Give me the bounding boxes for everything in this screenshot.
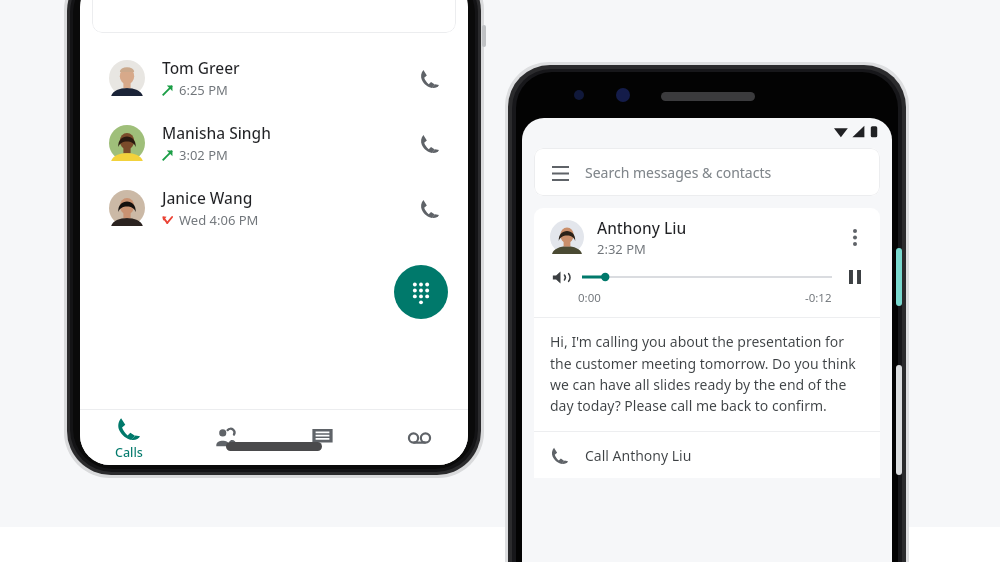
button[interactable]: Speaker xyxy=(550,267,570,287)
button[interactable]: Voicemail xyxy=(371,409,468,465)
staticText: 3:02 PM xyxy=(179,146,228,164)
staticText: Hi, I'm calling you about the presentati… xyxy=(550,332,866,415)
staticText: Call Anthony Liu xyxy=(585,446,692,465)
button[interactable]: Anthony Liu xyxy=(534,208,880,266)
staticText: Anthony Liu xyxy=(597,217,687,238)
staticText: Search messages & contacts xyxy=(585,163,772,182)
staticText: 0:00 xyxy=(578,290,601,306)
button[interactable]: Pause xyxy=(844,266,866,288)
staticText: 6:25 PM xyxy=(179,81,228,99)
staticText: -0:12 xyxy=(805,290,832,306)
staticText: Wed 4:06 PM xyxy=(179,211,259,229)
button[interactable]: Messages xyxy=(274,409,371,465)
button[interactable] xyxy=(92,0,456,33)
button[interactable]: Search messages & contacts xyxy=(534,148,880,196)
button[interactable]: More options xyxy=(840,222,870,252)
button[interactable]: Call Manisha Singh xyxy=(412,126,446,160)
staticText: Tom Greer xyxy=(162,57,240,78)
staticText: 2:32 PM xyxy=(597,240,646,258)
staticText: Manisha Singh xyxy=(162,122,271,143)
button[interactable]: Janice Wang xyxy=(80,175,468,240)
button[interactable]: Tom Greer xyxy=(80,45,468,110)
button[interactable]: Call Janice Wang xyxy=(412,191,446,225)
button[interactable]: Contacts xyxy=(177,409,274,465)
button[interactable]: Open dialpad xyxy=(394,265,448,319)
button[interactable]: Call Anthony Liu xyxy=(534,432,880,478)
button[interactable]: Calls xyxy=(80,409,177,465)
button[interactable]: Manisha Singh xyxy=(80,110,468,175)
button[interactable]: Call Tom Greer xyxy=(412,61,446,95)
staticText: Calls xyxy=(115,444,143,461)
staticText: Janice Wang xyxy=(162,187,253,208)
